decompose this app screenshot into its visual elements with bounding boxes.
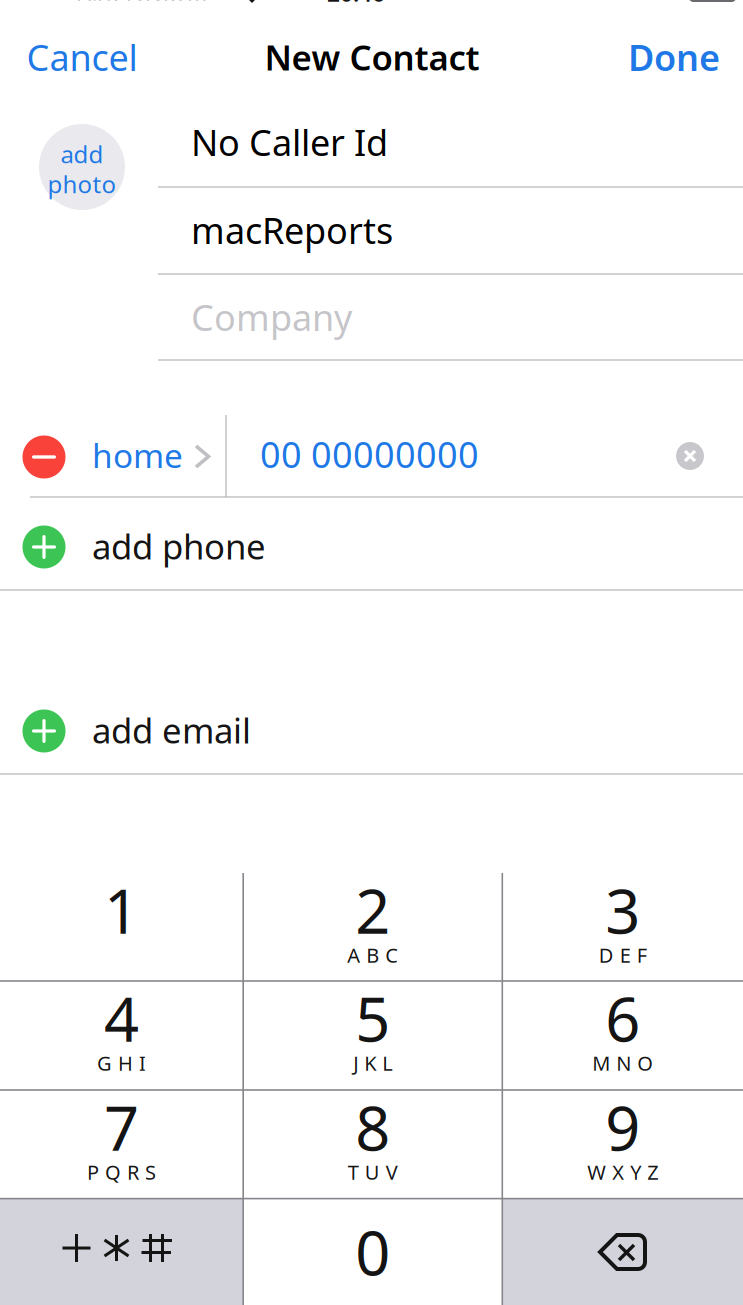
staticText: Cancel — [26, 33, 137, 81]
staticText: photo — [47, 168, 116, 200]
staticText: JKL — [353, 1050, 392, 1076]
button[interactable]: add email — [0, 687, 743, 774]
staticText: 7 — [104, 1086, 139, 1168]
staticText: 00 00000000 — [260, 430, 479, 478]
staticText: 20:46 — [327, 0, 385, 8]
staticText: add phone — [92, 523, 266, 569]
staticText: 9 — [605, 1086, 640, 1168]
button[interactable]: No Caller Id — [0, 0, 743, 1305]
button[interactable]: 2 — [243, 873, 502, 981]
button[interactable]: 6 — [502, 981, 743, 1090]
button[interactable]: 3 — [502, 873, 743, 981]
button[interactable]: Delete phone — [22, 435, 65, 478]
staticText: 3 — [605, 869, 640, 951]
button[interactable]: 1 — [0, 873, 243, 981]
staticText: GHI — [97, 1050, 146, 1076]
button[interactable]: Cancel — [26, 33, 137, 81]
staticText: 8 — [355, 1086, 390, 1168]
button[interactable]: Plus star pound — [0, 1199, 243, 1305]
button[interactable]: 4 — [0, 981, 243, 1090]
button[interactable]: 8 — [243, 1090, 502, 1199]
staticText: 0 — [355, 1211, 390, 1292]
staticText: home — [92, 433, 183, 477]
button[interactable]: add — [39, 124, 125, 210]
button[interactable]: Delete digit — [502, 1199, 743, 1305]
staticText: WXYZ — [587, 1159, 658, 1185]
button[interactable]: Clear text — [676, 442, 704, 470]
staticText: Company — [191, 293, 352, 341]
staticText: PQRS — [87, 1159, 156, 1185]
button[interactable]: 00 00000000 — [0, 0, 743, 1305]
staticText: MNO — [592, 1050, 653, 1076]
staticText: 5 — [355, 977, 390, 1059]
staticText: 4 — [104, 977, 139, 1059]
staticText: Done — [628, 33, 720, 81]
staticText: No Caller Id — [191, 118, 388, 166]
staticText: New Contact — [264, 34, 479, 80]
button[interactable]: 9 — [502, 1090, 743, 1199]
button[interactable]: home — [0, 0, 743, 1305]
staticText: TUV — [348, 1159, 398, 1185]
button[interactable]: 7 — [0, 1090, 243, 1199]
staticText: macReports — [191, 206, 393, 254]
button[interactable]: 5 — [243, 981, 502, 1090]
button[interactable]: macReports — [0, 0, 743, 1305]
staticText: add email — [92, 707, 251, 753]
staticText: ABC — [347, 942, 398, 968]
button[interactable]: Company — [0, 0, 743, 1305]
staticText: DEF — [599, 942, 647, 968]
staticText: 1 — [104, 869, 139, 951]
button[interactable]: add phone — [0, 497, 743, 590]
button[interactable]: 0 — [243, 1199, 502, 1305]
staticText: Türk Telekom — [73, 0, 207, 6]
staticText: add — [60, 138, 103, 170]
staticText: 2 — [355, 869, 390, 951]
staticText: 6 — [605, 977, 640, 1059]
button[interactable]: Done — [628, 33, 720, 81]
